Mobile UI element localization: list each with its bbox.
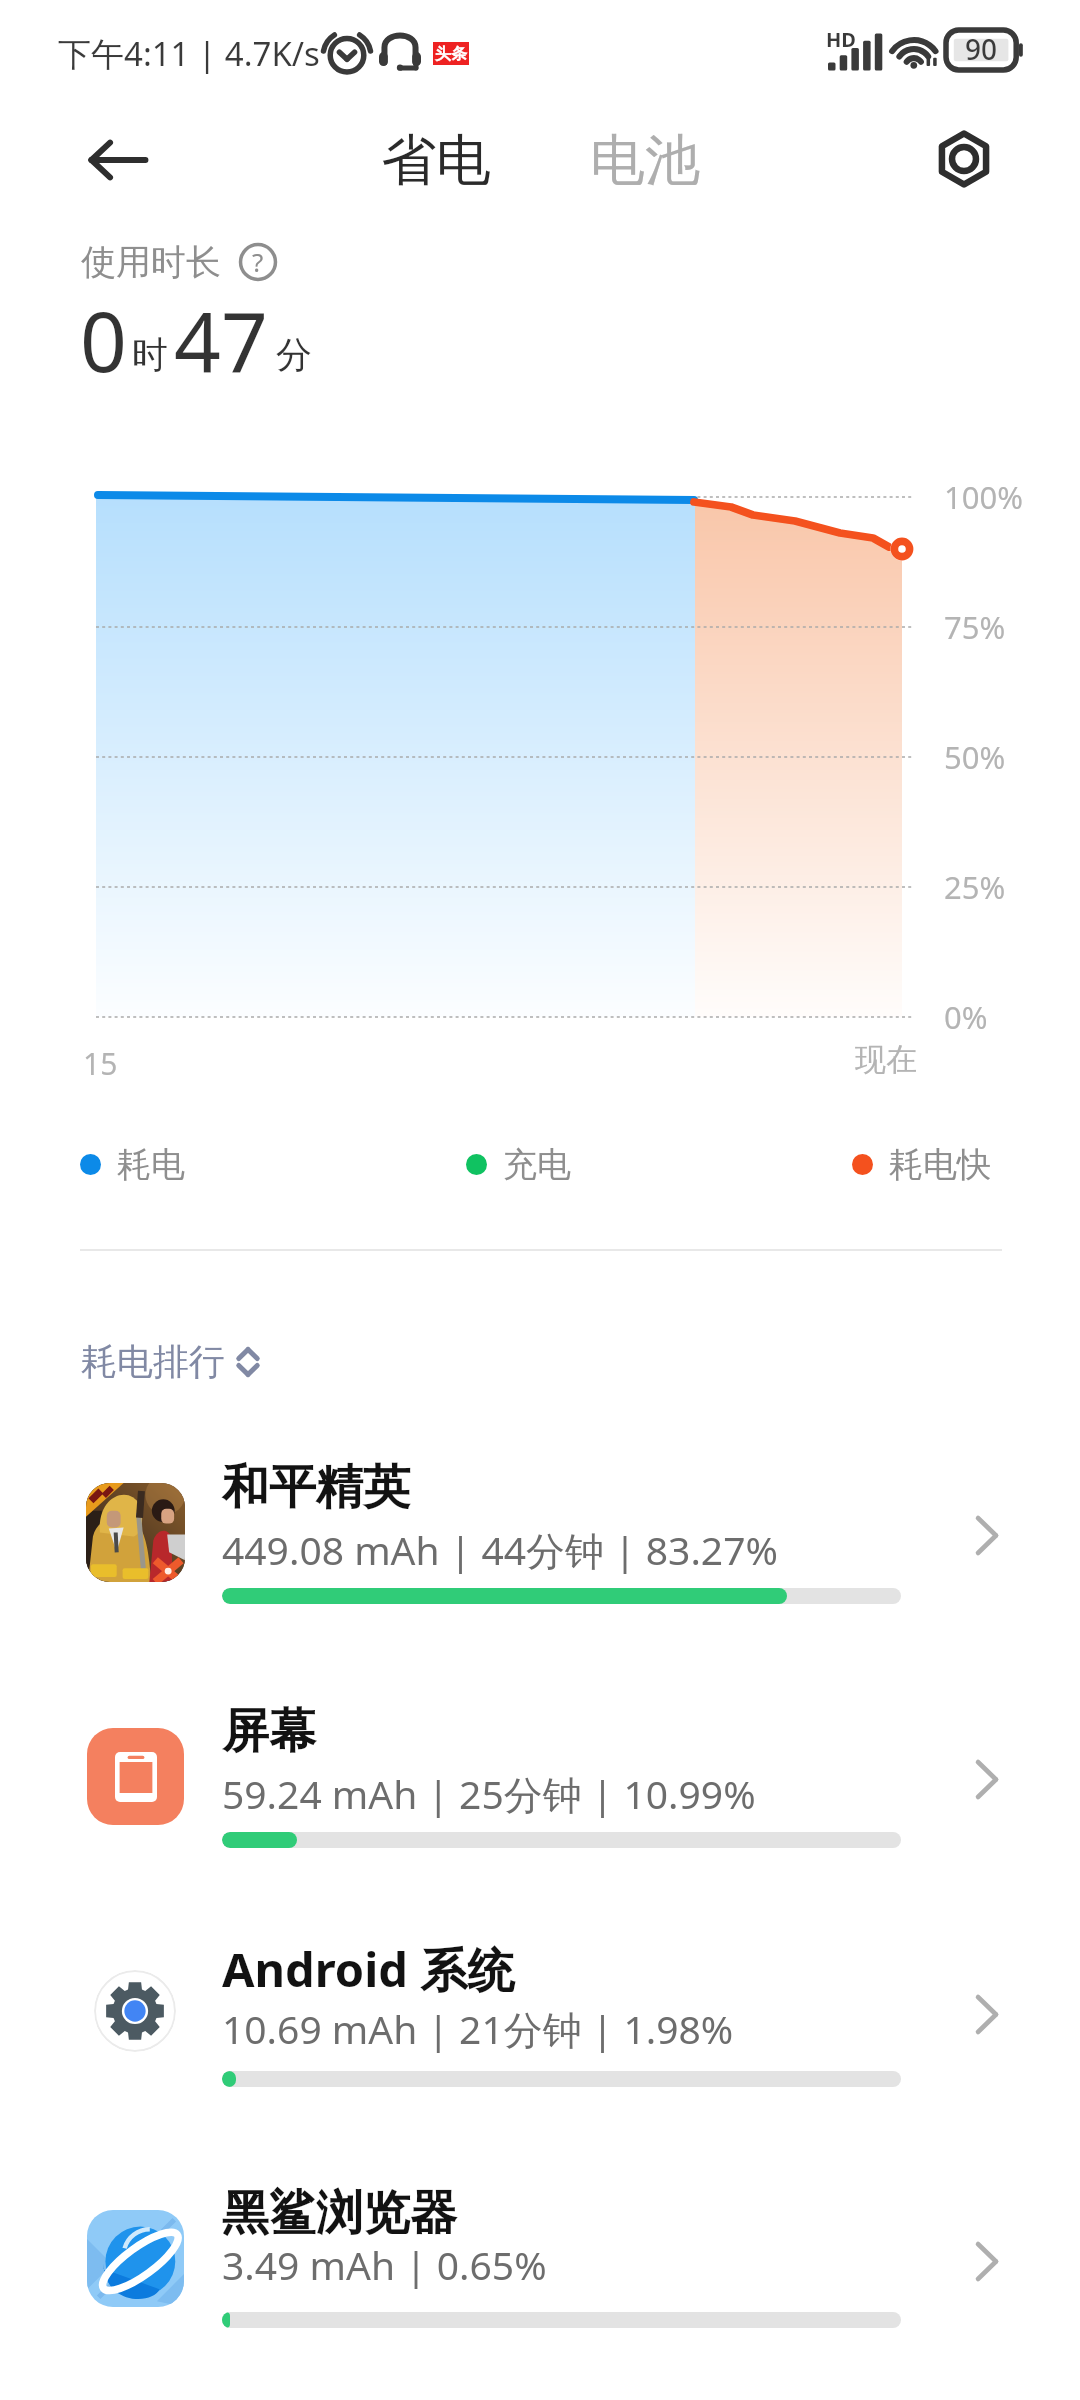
staticText: 0: [80, 284, 127, 396]
staticText: 100%: [944, 476, 1023, 518]
staticText: 耗电快: [889, 1143, 991, 1186]
button[interactable]: Help about usage time: [239, 243, 277, 281]
staticText: 25%: [944, 866, 1006, 908]
staticText: 0%: [944, 996, 988, 1038]
staticText: 省电: [381, 126, 491, 195]
button[interactable]: 耗电排行: [73, 1331, 267, 1392]
staticText: 耗电排行: [81, 1339, 225, 1384]
staticText: 屏幕: [222, 1702, 316, 1761]
staticText: 和平精英: [222, 1458, 410, 1517]
staticText: 59.24 mAh | 25分钟 | 10.99%: [222, 1767, 756, 1820]
staticText: 时: [132, 332, 168, 377]
button[interactable]: 屏幕: [0, 1660, 1080, 1900]
staticText: 75%: [944, 606, 1006, 648]
staticText: 15: [83, 1043, 118, 1084]
staticText: HD: [826, 26, 856, 53]
staticText: 现在: [855, 1040, 917, 1079]
button[interactable]: 省电: [371, 118, 501, 203]
button[interactable]: 黑鲨浏览器: [0, 2142, 1080, 2382]
staticText: 电池: [590, 126, 700, 195]
staticText: Android 系统: [222, 1937, 515, 2001]
staticText: 449.08 mAh | 44分钟 | 83.27%: [222, 1523, 778, 1576]
staticText: 耗电: [117, 1143, 185, 1186]
staticText: 10.69 mAh | 21分钟 | 1.98%: [222, 2002, 734, 2055]
button[interactable]: 和平精英: [0, 1416, 1080, 1656]
staticText: ?: [252, 244, 264, 279]
staticText: 90: [965, 30, 998, 68]
staticText: 下午4:11 | 4.7K/s: [58, 31, 320, 76]
staticText: 黑鲨浏览器: [222, 2184, 457, 2243]
staticText: 47: [174, 284, 268, 396]
button[interactable]: Back: [83, 126, 151, 194]
staticText: 3.49 mAh | 0.65%: [222, 2238, 547, 2291]
staticText: 分: [276, 332, 312, 377]
staticText: 头条: [435, 44, 467, 64]
staticText: 充电: [503, 1143, 571, 1186]
button[interactable]: 电池: [580, 118, 710, 203]
staticText: 50%: [944, 736, 1006, 778]
button[interactable]: Android 系统: [0, 1895, 1080, 2135]
staticText: 使用时长: [81, 240, 221, 284]
button[interactable]: Settings: [930, 125, 998, 193]
